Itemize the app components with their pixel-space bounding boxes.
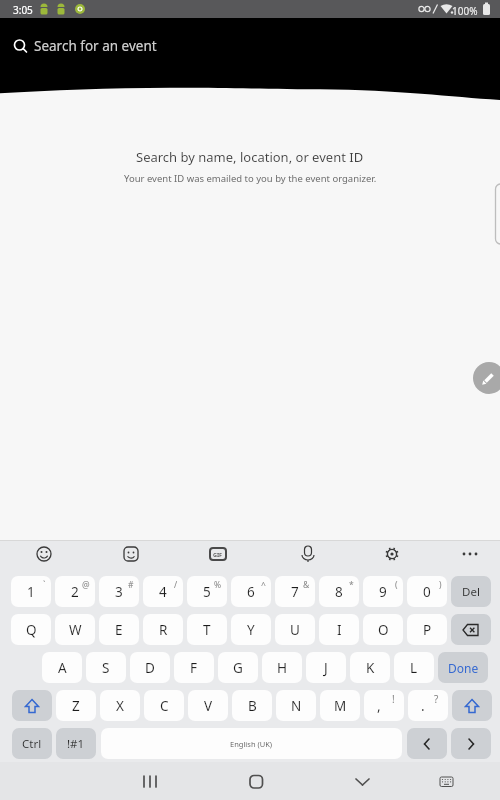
staticText: / <box>174 579 178 591</box>
staticText: 5 <box>203 583 211 601</box>
staticText: Search for an event <box>34 37 157 55</box>
button[interactable]: F <box>174 652 214 683</box>
button[interactable]: !#1 <box>56 728 96 759</box>
staticText: ? <box>434 692 439 706</box>
staticText: Your event ID was emailed to you by the … <box>124 172 377 185</box>
staticText: Y <box>247 621 255 639</box>
button[interactable]: 2 <box>55 576 95 607</box>
button[interactable] <box>407 728 447 759</box>
staticText: V <box>204 697 213 715</box>
button[interactable]: T <box>187 614 227 645</box>
button[interactable] <box>333 762 500 800</box>
staticText: 8 <box>335 583 343 601</box>
button[interactable]: 0 <box>407 576 447 607</box>
staticText: 7 <box>291 583 299 601</box>
button[interactable] <box>12 690 52 721</box>
staticText: ` <box>43 579 46 591</box>
staticText: English (UK) <box>230 739 273 749</box>
button[interactable] <box>451 728 491 759</box>
button[interactable]: G <box>218 652 258 683</box>
button[interactable]: Search for an event <box>0 28 500 64</box>
staticText: N <box>291 697 302 715</box>
staticText: U <box>290 621 300 639</box>
staticText: Ctrl <box>22 736 42 752</box>
staticText: G <box>233 659 243 677</box>
button[interactable]: GIF <box>209 547 227 561</box>
staticText: B <box>248 697 257 715</box>
staticText: M <box>334 697 347 715</box>
staticText: W <box>69 621 82 639</box>
button[interactable]: English (UK) <box>101 728 402 759</box>
staticText: Search by name, location, or event ID <box>136 148 364 166</box>
staticText: . <box>421 697 425 715</box>
button[interactable]: 8 <box>319 576 359 607</box>
button[interactable]: Z <box>56 690 96 721</box>
button[interactable]: Ctrl <box>12 728 52 759</box>
staticText: O <box>378 621 389 639</box>
staticText: 0 <box>423 583 431 601</box>
button[interactable]: 5 <box>187 576 227 607</box>
staticText: & <box>303 579 310 591</box>
button[interactable]: S <box>86 652 126 683</box>
button[interactable]: K <box>350 652 390 683</box>
staticText: 3:05 <box>13 3 33 17</box>
button[interactable]: X <box>100 690 140 721</box>
staticText: # <box>128 579 134 591</box>
button[interactable]: 7 <box>275 576 315 607</box>
button[interactable]: Y <box>231 614 271 645</box>
button[interactable] <box>0 762 166 800</box>
button[interactable]: 9 <box>363 576 403 607</box>
button[interactable]: D <box>130 652 170 683</box>
button[interactable]: Done <box>438 652 488 683</box>
button[interactable]: P <box>407 614 447 645</box>
staticText: * <box>349 579 354 591</box>
button[interactable]: 3 <box>99 576 139 607</box>
button[interactable]: V <box>188 690 228 721</box>
button[interactable]: U <box>275 614 315 645</box>
staticText: P <box>423 621 432 639</box>
button[interactable]: Q <box>11 614 51 645</box>
button[interactable]: O <box>363 614 403 645</box>
button[interactable]: A <box>42 652 82 683</box>
staticText: !#1 <box>67 736 85 752</box>
staticText: J <box>324 659 328 677</box>
button[interactable]: R <box>143 614 183 645</box>
button[interactable]: B <box>232 690 272 721</box>
button[interactable]: H <box>262 652 302 683</box>
button[interactable]: L <box>394 652 434 683</box>
staticText: D <box>145 659 155 677</box>
staticText: 4 <box>159 583 167 601</box>
button[interactable]: M <box>320 690 360 721</box>
button[interactable]: 6 <box>231 576 271 607</box>
button[interactable]: N <box>276 690 316 721</box>
staticText: I <box>337 621 342 639</box>
button[interactable]: 4 <box>143 576 183 607</box>
button[interactable]: W <box>55 614 95 645</box>
button[interactable] <box>452 690 492 721</box>
staticText: ^ <box>261 579 266 591</box>
button[interactable] <box>166 762 333 800</box>
staticText: ) <box>439 579 442 591</box>
staticText: S <box>102 659 110 677</box>
staticText: F <box>190 659 198 677</box>
staticText: @ <box>82 579 90 591</box>
button[interactable]: . <box>408 690 448 721</box>
button[interactable]: C <box>144 690 184 721</box>
staticText: 1 <box>27 583 35 601</box>
button[interactable]: , <box>364 690 404 721</box>
button[interactable] <box>473 362 500 394</box>
button[interactable]: J <box>306 652 346 683</box>
button[interactable]: I <box>319 614 359 645</box>
staticText: Q <box>26 621 37 639</box>
button[interactable] <box>451 614 491 645</box>
staticText: A <box>58 659 67 677</box>
button[interactable]: Del <box>451 576 491 607</box>
staticText: 6 <box>247 583 255 601</box>
staticText: L <box>410 659 418 677</box>
button[interactable]: E <box>99 614 139 645</box>
staticText: 2 <box>71 583 79 601</box>
button[interactable]: 1 <box>11 576 51 607</box>
staticText: ( <box>395 579 398 591</box>
staticText: ! <box>392 692 395 706</box>
staticText: E <box>115 621 123 639</box>
